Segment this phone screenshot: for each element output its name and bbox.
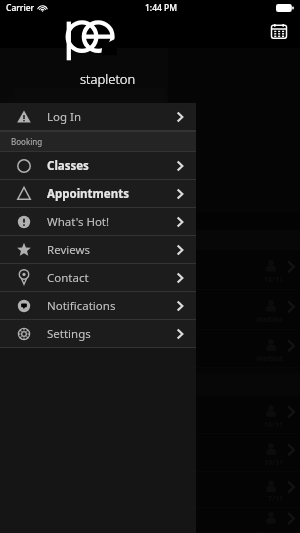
button[interactable]: Classes: [0, 152, 196, 180]
staticText: Carrier: [6, 2, 35, 14]
button[interactable]: Contact: [0, 264, 196, 292]
button[interactable]: Appointments: [0, 180, 196, 208]
staticText: stapleton: [80, 70, 136, 88]
staticText: Reviews: [47, 242, 91, 258]
button[interactable]: What's Hot!: [0, 208, 196, 236]
staticText: Classes: [47, 158, 89, 174]
button[interactable]: Reviews: [0, 236, 196, 264]
button[interactable]: 7/11: [0, 472, 300, 508]
button[interactable]: Waitlist: [0, 330, 300, 368]
button[interactable]: Settings: [0, 320, 196, 348]
staticText: 1:44 PM: [145, 2, 178, 14]
staticText: Notifications: [47, 298, 116, 314]
staticText: Log In: [47, 109, 82, 125]
button[interactable]: Waitlist: [0, 508, 300, 533]
staticText: Booking: [11, 136, 43, 147]
button[interactable]: 10/11: [0, 250, 300, 290]
button[interactable]: Waitlist: [0, 290, 300, 330]
button[interactable]: Log In: [0, 103, 196, 131]
button[interactable]: Calendar: [266, 18, 292, 44]
button[interactable]: Notifications: [0, 292, 196, 320]
staticText: Contact: [47, 270, 89, 286]
staticText: Appointments: [47, 186, 129, 202]
staticText: What's Hot!: [47, 214, 110, 230]
button[interactable]: 10/11: [0, 434, 300, 472]
staticText: Settings: [47, 326, 91, 342]
button[interactable]: 10/11: [0, 396, 300, 434]
